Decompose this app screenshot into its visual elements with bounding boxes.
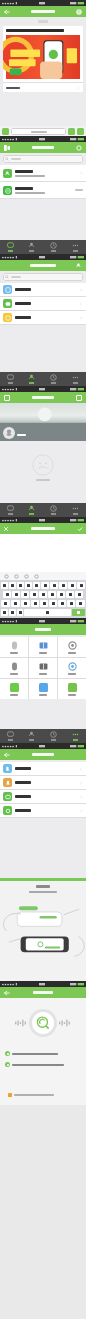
button[interactable] — [3, 26, 83, 92]
button[interactable] — [50, 582, 58, 589]
button[interactable]: Me — [64, 729, 86, 743]
button[interactable]: Add — [75, 144, 83, 152]
button[interactable] — [58, 600, 66, 607]
button[interactable] — [30, 591, 38, 598]
button[interactable]: Voice — [2, 128, 9, 135]
button[interactable] — [67, 600, 75, 607]
button[interactable]: Send — [77, 526, 83, 532]
button[interactable]: Chats — [0, 503, 21, 517]
button[interactable] — [68, 582, 76, 589]
button[interactable] — [1, 609, 8, 616]
button[interactable]: Back — [3, 989, 11, 997]
button[interactable] — [40, 600, 48, 607]
button[interactable] — [8, 1093, 78, 1097]
button[interactable]: Profile — [3, 144, 11, 152]
button[interactable] — [17, 609, 23, 616]
button[interactable]: Chats — [0, 729, 21, 743]
button[interactable] — [0, 790, 86, 803]
button[interactable] — [66, 591, 74, 598]
button[interactable] — [75, 591, 83, 598]
button[interactable] — [39, 591, 47, 598]
button[interactable]: Discover — [42, 729, 64, 743]
button[interactable]: Contacts — [21, 729, 42, 743]
button[interactable]: Avatar — [3, 427, 15, 439]
button[interactable]: Back — [3, 751, 11, 759]
button[interactable] — [49, 600, 57, 607]
button[interactable] — [0, 311, 86, 324]
button[interactable]: Discover — [42, 240, 64, 254]
button[interactable]: Me — [64, 372, 86, 386]
button[interactable]: Camera — [75, 394, 83, 402]
button[interactable]: Settings — [75, 8, 83, 16]
button[interactable] — [0, 283, 86, 296]
button[interactable] — [57, 591, 65, 598]
button[interactable]: Emoji — [68, 128, 75, 135]
button[interactable] — [1, 600, 10, 607]
button[interactable]: Me — [64, 503, 86, 517]
button[interactable] — [31, 600, 39, 607]
button[interactable] — [11, 600, 20, 607]
button[interactable] — [11, 128, 66, 135]
button[interactable] — [24, 609, 71, 616]
button[interactable]: Add contact — [75, 262, 83, 270]
button[interactable]: Item 2 — [58, 679, 86, 699]
button[interactable] — [59, 582, 67, 589]
button[interactable] — [3, 273, 83, 281]
button[interactable] — [77, 582, 85, 589]
button[interactable] — [9, 609, 16, 616]
button[interactable] — [72, 609, 85, 616]
button[interactable]: Back — [3, 8, 11, 16]
button[interactable]: Contacts — [21, 503, 42, 517]
button[interactable] — [3, 155, 83, 163]
button[interactable]: Item 0 — [0, 658, 28, 678]
button[interactable]: Close — [3, 526, 9, 532]
button[interactable] — [17, 582, 24, 589]
button[interactable]: Chats — [0, 372, 21, 386]
button[interactable] — [76, 600, 85, 607]
button[interactable]: Discover — [42, 372, 64, 386]
button[interactable] — [12, 591, 20, 598]
button[interactable] — [0, 297, 86, 310]
button[interactable]: Search music — [29, 1009, 57, 1037]
button[interactable] — [33, 582, 40, 589]
button[interactable] — [0, 776, 86, 789]
button[interactable] — [21, 600, 30, 607]
button[interactable]: Chats — [0, 240, 21, 254]
button[interactable] — [41, 582, 49, 589]
button[interactable] — [1, 582, 8, 589]
button[interactable]: Item 1 — [29, 658, 57, 678]
button[interactable]: Item 0 — [0, 637, 28, 657]
button[interactable] — [0, 165, 86, 181]
button[interactable]: Tool 4 — [34, 574, 39, 579]
button[interactable] — [9, 582, 16, 589]
button[interactable]: Tool 2 — [14, 574, 19, 579]
button[interactable]: Me — [64, 240, 86, 254]
button[interactable]: Item 2 — [58, 658, 86, 678]
button[interactable]: Tool 1 — [4, 574, 9, 579]
button[interactable]: Contacts — [21, 372, 42, 386]
button[interactable]: Item 1 — [29, 637, 57, 657]
button[interactable]: Item 2 — [58, 637, 86, 657]
button[interactable]: Item 1 — [29, 679, 57, 699]
button[interactable] — [25, 582, 32, 589]
button[interactable]: Tool 3 — [24, 574, 29, 579]
button[interactable]: More — [77, 128, 84, 135]
button[interactable] — [3, 591, 11, 598]
button[interactable] — [0, 762, 86, 775]
button[interactable] — [0, 804, 86, 817]
button[interactable] — [48, 591, 56, 598]
button[interactable]: Discover — [42, 503, 64, 517]
button[interactable]: Back — [3, 394, 11, 402]
button[interactable]: Item 0 — [0, 679, 28, 699]
button[interactable]: Contacts — [21, 240, 42, 254]
button[interactable] — [21, 591, 29, 598]
button[interactable] — [0, 182, 86, 198]
